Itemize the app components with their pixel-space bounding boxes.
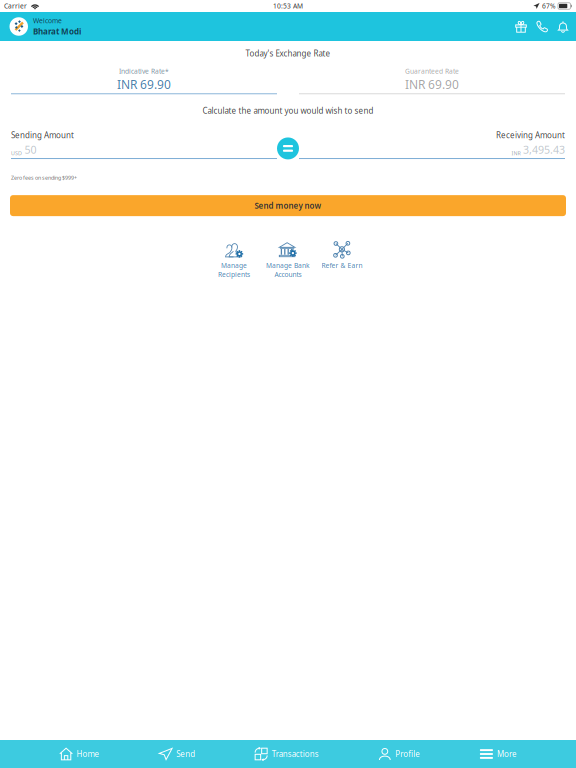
staticText: Manage bbox=[221, 261, 247, 270]
staticText: Zero fees on sending $999+ bbox=[11, 174, 77, 181]
button[interactable]: Refer & Earn bbox=[315, 241, 369, 281]
button[interactable]: Manage bbox=[207, 241, 261, 281]
staticText: Sending Amount bbox=[11, 130, 74, 140]
staticText: Refer & Earn bbox=[321, 261, 362, 270]
button[interactable]: Send bbox=[159, 740, 195, 768]
staticText: INR bbox=[511, 149, 520, 157]
staticText: INR 69.90 bbox=[117, 76, 171, 92]
button[interactable]: Rewards bbox=[510, 12, 531, 41]
button[interactable]: Send money now bbox=[10, 195, 566, 216]
staticText: Send bbox=[176, 749, 195, 759]
button[interactable]: Welcome bbox=[0, 12, 81, 41]
staticText: INR 69.90 bbox=[405, 76, 459, 92]
staticText: Guaranteed Rate bbox=[405, 67, 459, 75]
button[interactable]: Manage Bank bbox=[261, 241, 315, 281]
staticText: Receiving Amount bbox=[496, 130, 565, 140]
button[interactable]: Indicative Rate* bbox=[11, 67, 277, 94]
staticText: Indicative Rate* bbox=[119, 67, 169, 75]
staticText: Calculate the amount you would wish to s… bbox=[202, 105, 373, 116]
button[interactable]: More bbox=[479, 740, 517, 768]
staticText: 50 bbox=[24, 142, 36, 157]
staticText: USD bbox=[11, 149, 22, 157]
button[interactable]: Guaranteed Rate bbox=[299, 67, 565, 94]
button[interactable]: Transactions bbox=[254, 740, 319, 768]
staticText: Carrier bbox=[4, 2, 27, 10]
staticText: 67% bbox=[542, 2, 556, 10]
staticText: Bharat Modi bbox=[33, 26, 81, 37]
staticText: Profile bbox=[395, 749, 420, 759]
staticText: Home bbox=[77, 749, 100, 759]
button[interactable]: Notifications bbox=[552, 12, 573, 41]
button[interactable]: Call support bbox=[531, 12, 552, 41]
staticText: 3,495.43 bbox=[523, 142, 565, 157]
staticText: More bbox=[497, 749, 517, 759]
staticText: Send money now bbox=[254, 200, 321, 211]
staticText: 10:53 AM bbox=[273, 2, 303, 10]
button[interactable]: Home bbox=[59, 740, 100, 768]
staticText: Recipients bbox=[218, 270, 250, 279]
staticText: Manage Bank bbox=[266, 261, 310, 270]
staticText: Today's Exchange Rate bbox=[245, 48, 330, 59]
button[interactable]: Profile bbox=[378, 740, 420, 768]
staticText: Transactions bbox=[272, 749, 319, 759]
staticText: Welcome bbox=[33, 16, 62, 25]
staticText: Accounts bbox=[274, 270, 301, 279]
